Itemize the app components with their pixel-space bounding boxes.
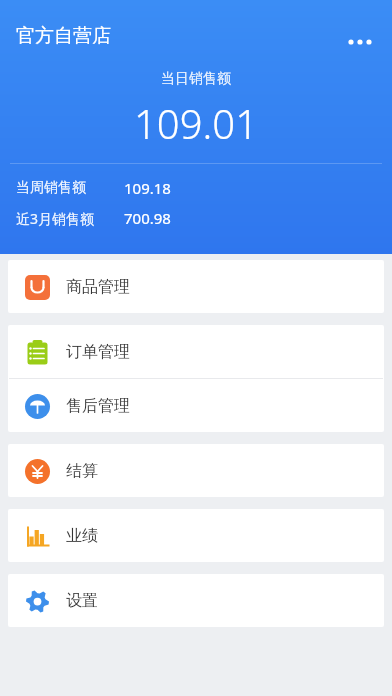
staticText: 当日销售额	[161, 70, 231, 88]
button[interactable]: 售后管理	[8, 379, 384, 432]
staticText: 业绩	[66, 526, 98, 546]
button[interactable]: 商品管理	[8, 260, 384, 313]
staticText: 近3月销售额	[16, 209, 95, 228]
staticText: 订单管理	[66, 342, 130, 362]
staticText: 当周销售额	[16, 179, 86, 197]
staticText: 设置	[66, 591, 98, 611]
button[interactable]: 设置	[8, 574, 384, 627]
button[interactable]: 业绩	[8, 509, 384, 562]
staticText: 官方自营店	[16, 24, 111, 48]
button[interactable]: More options	[336, 18, 384, 66]
staticText: 售后管理	[66, 396, 130, 416]
staticText: 109.18	[124, 178, 171, 198]
staticText: 700.98	[124, 208, 171, 228]
button[interactable]: 订单管理	[8, 325, 384, 378]
staticText: 109.01	[134, 96, 258, 150]
staticText: 商品管理	[66, 277, 130, 297]
staticText: 结算	[66, 461, 98, 481]
button[interactable]: 结算	[8, 444, 384, 497]
